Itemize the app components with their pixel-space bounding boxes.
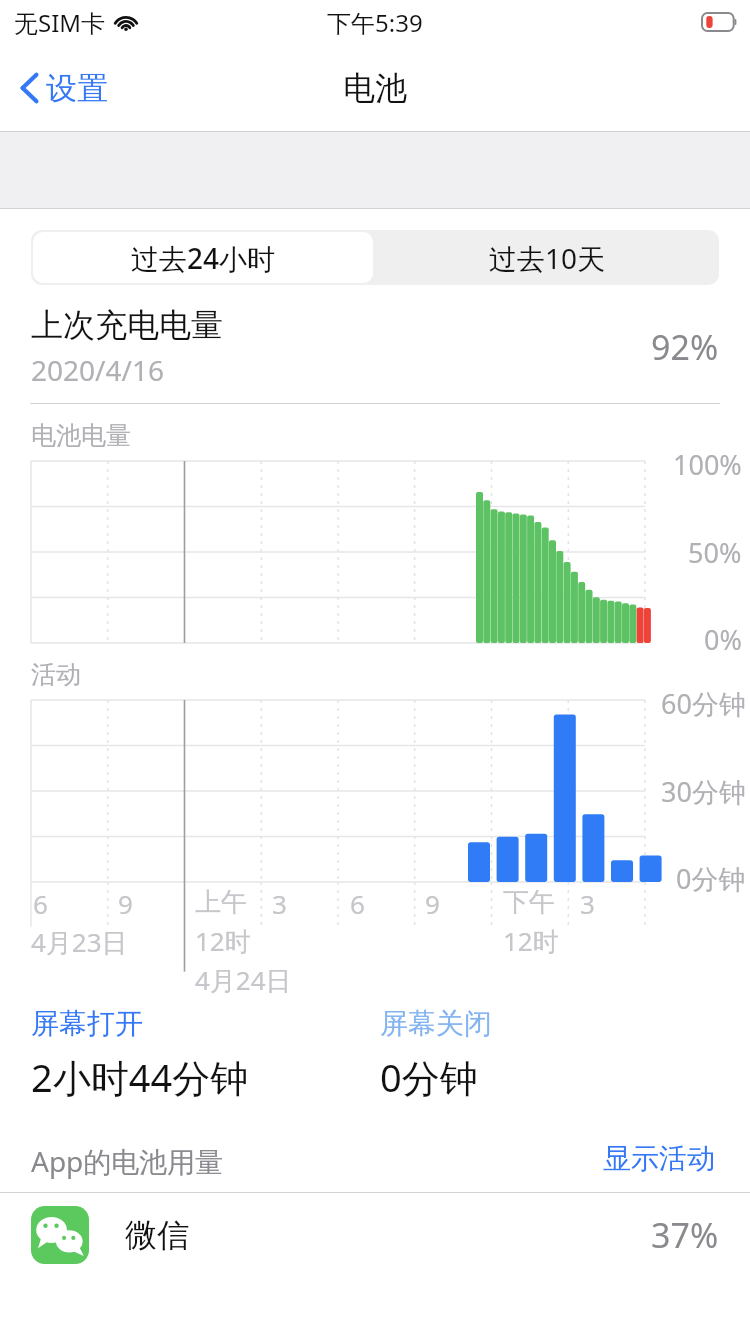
button[interactable]: 设置 <box>10 60 116 116</box>
staticText: 上次充电电量 <box>31 305 223 345</box>
staticText: 下午5:39 <box>327 6 423 39</box>
staticText: 3 <box>272 886 287 921</box>
staticText: 无SIM卡 <box>14 6 106 39</box>
staticText: 显示活动 <box>603 1141 715 1176</box>
staticText: 屏幕打开 <box>31 1006 143 1041</box>
staticText: 微信 <box>125 1215 189 1255</box>
staticText: 12时 <box>503 923 559 959</box>
staticText: 37% <box>651 1212 719 1258</box>
staticText: App的电池用量 <box>31 1142 224 1180</box>
staticText: 电池电量 <box>31 420 131 451</box>
staticText: 4月24日 <box>195 962 292 998</box>
staticText: 4月23日 <box>31 924 128 960</box>
staticText: 过去10天 <box>489 239 606 277</box>
staticText: 0% <box>704 621 742 658</box>
staticText: 0分钟 <box>676 860 746 897</box>
staticText: 下午 <box>503 886 555 919</box>
staticText: 3 <box>580 886 595 921</box>
button[interactable]: 显示活动 <box>599 1137 719 1180</box>
staticText: 30分钟 <box>661 773 746 810</box>
staticText: 50% <box>688 534 742 571</box>
staticText: 9 <box>425 886 440 921</box>
staticText: 屏幕关闭 <box>380 1006 492 1041</box>
staticText: 2020/4/16 <box>31 351 164 389</box>
other: Battery level <box>702 13 738 31</box>
staticText: 92% <box>651 324 719 370</box>
staticText: 过去24小时 <box>131 239 276 277</box>
staticText: 6 <box>33 886 48 921</box>
staticText: 电池 <box>343 68 407 108</box>
staticText: 100% <box>673 446 742 483</box>
button[interactable]: 过去10天 <box>375 230 719 285</box>
staticText: 活动 <box>31 659 81 690</box>
staticText: 6 <box>350 886 365 921</box>
button[interactable]: 过去24小时 <box>33 232 373 283</box>
staticText: 9 <box>118 886 133 921</box>
staticText: 上午 <box>195 886 247 919</box>
staticText: 0分钟 <box>380 1051 478 1103</box>
staticText: 12时 <box>195 923 251 959</box>
button[interactable]: 微信 <box>0 1193 750 1277</box>
staticText: 2小时44分钟 <box>31 1051 249 1103</box>
staticText: 设置 <box>46 69 108 108</box>
staticText: 60分钟 <box>661 685 746 722</box>
